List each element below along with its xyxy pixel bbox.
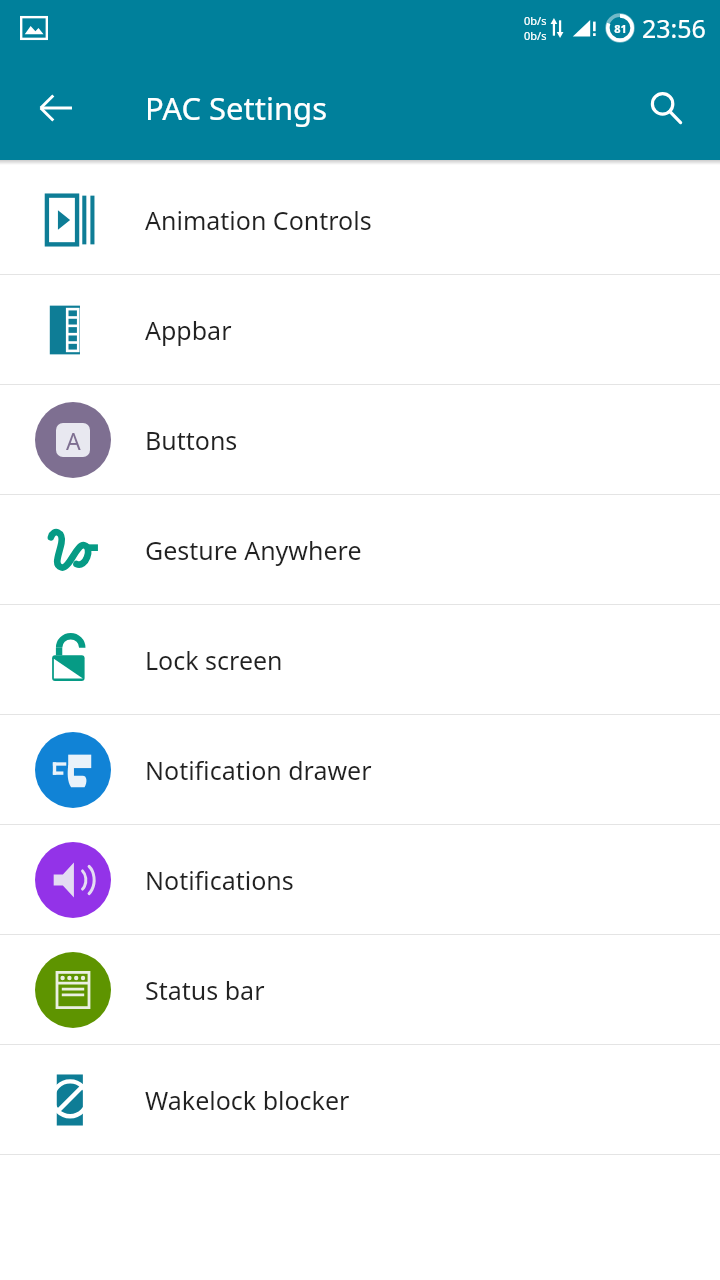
button[interactable]: Lock screen [0, 605, 720, 714]
staticText: Buttons [145, 423, 238, 457]
staticText: Wakelock blocker [145, 1083, 350, 1117]
staticText: PAC Settings [145, 87, 328, 129]
staticText: Notifications [145, 863, 294, 897]
staticText: Status bar [145, 973, 265, 1007]
button[interactable]: Wakelock blocker [0, 1045, 720, 1154]
staticText: Notification drawer [145, 753, 372, 787]
button[interactable]: Notifications [0, 825, 720, 934]
staticText: Animation Controls [145, 203, 372, 237]
staticText: 81 [614, 21, 627, 36]
staticText: Gesture Anywhere [145, 533, 362, 567]
staticText: 23:56 [642, 11, 706, 45]
button[interactable]: Animation Controls [0, 165, 720, 274]
staticText: 0b/s [524, 13, 547, 28]
button[interactable]: Status bar [0, 935, 720, 1044]
staticText: Appbar [145, 313, 232, 347]
staticText: Lock screen [145, 643, 283, 677]
staticText: A [66, 425, 81, 456]
button[interactable]: A [0, 385, 720, 494]
button[interactable]: Search [630, 72, 702, 144]
button[interactable]: Notification drawer [0, 715, 720, 824]
button[interactable]: Back [20, 72, 92, 144]
button[interactable]: Gesture Anywhere [0, 495, 720, 604]
button[interactable]: Appbar [0, 275, 720, 384]
staticText: 0b/s [524, 28, 547, 43]
